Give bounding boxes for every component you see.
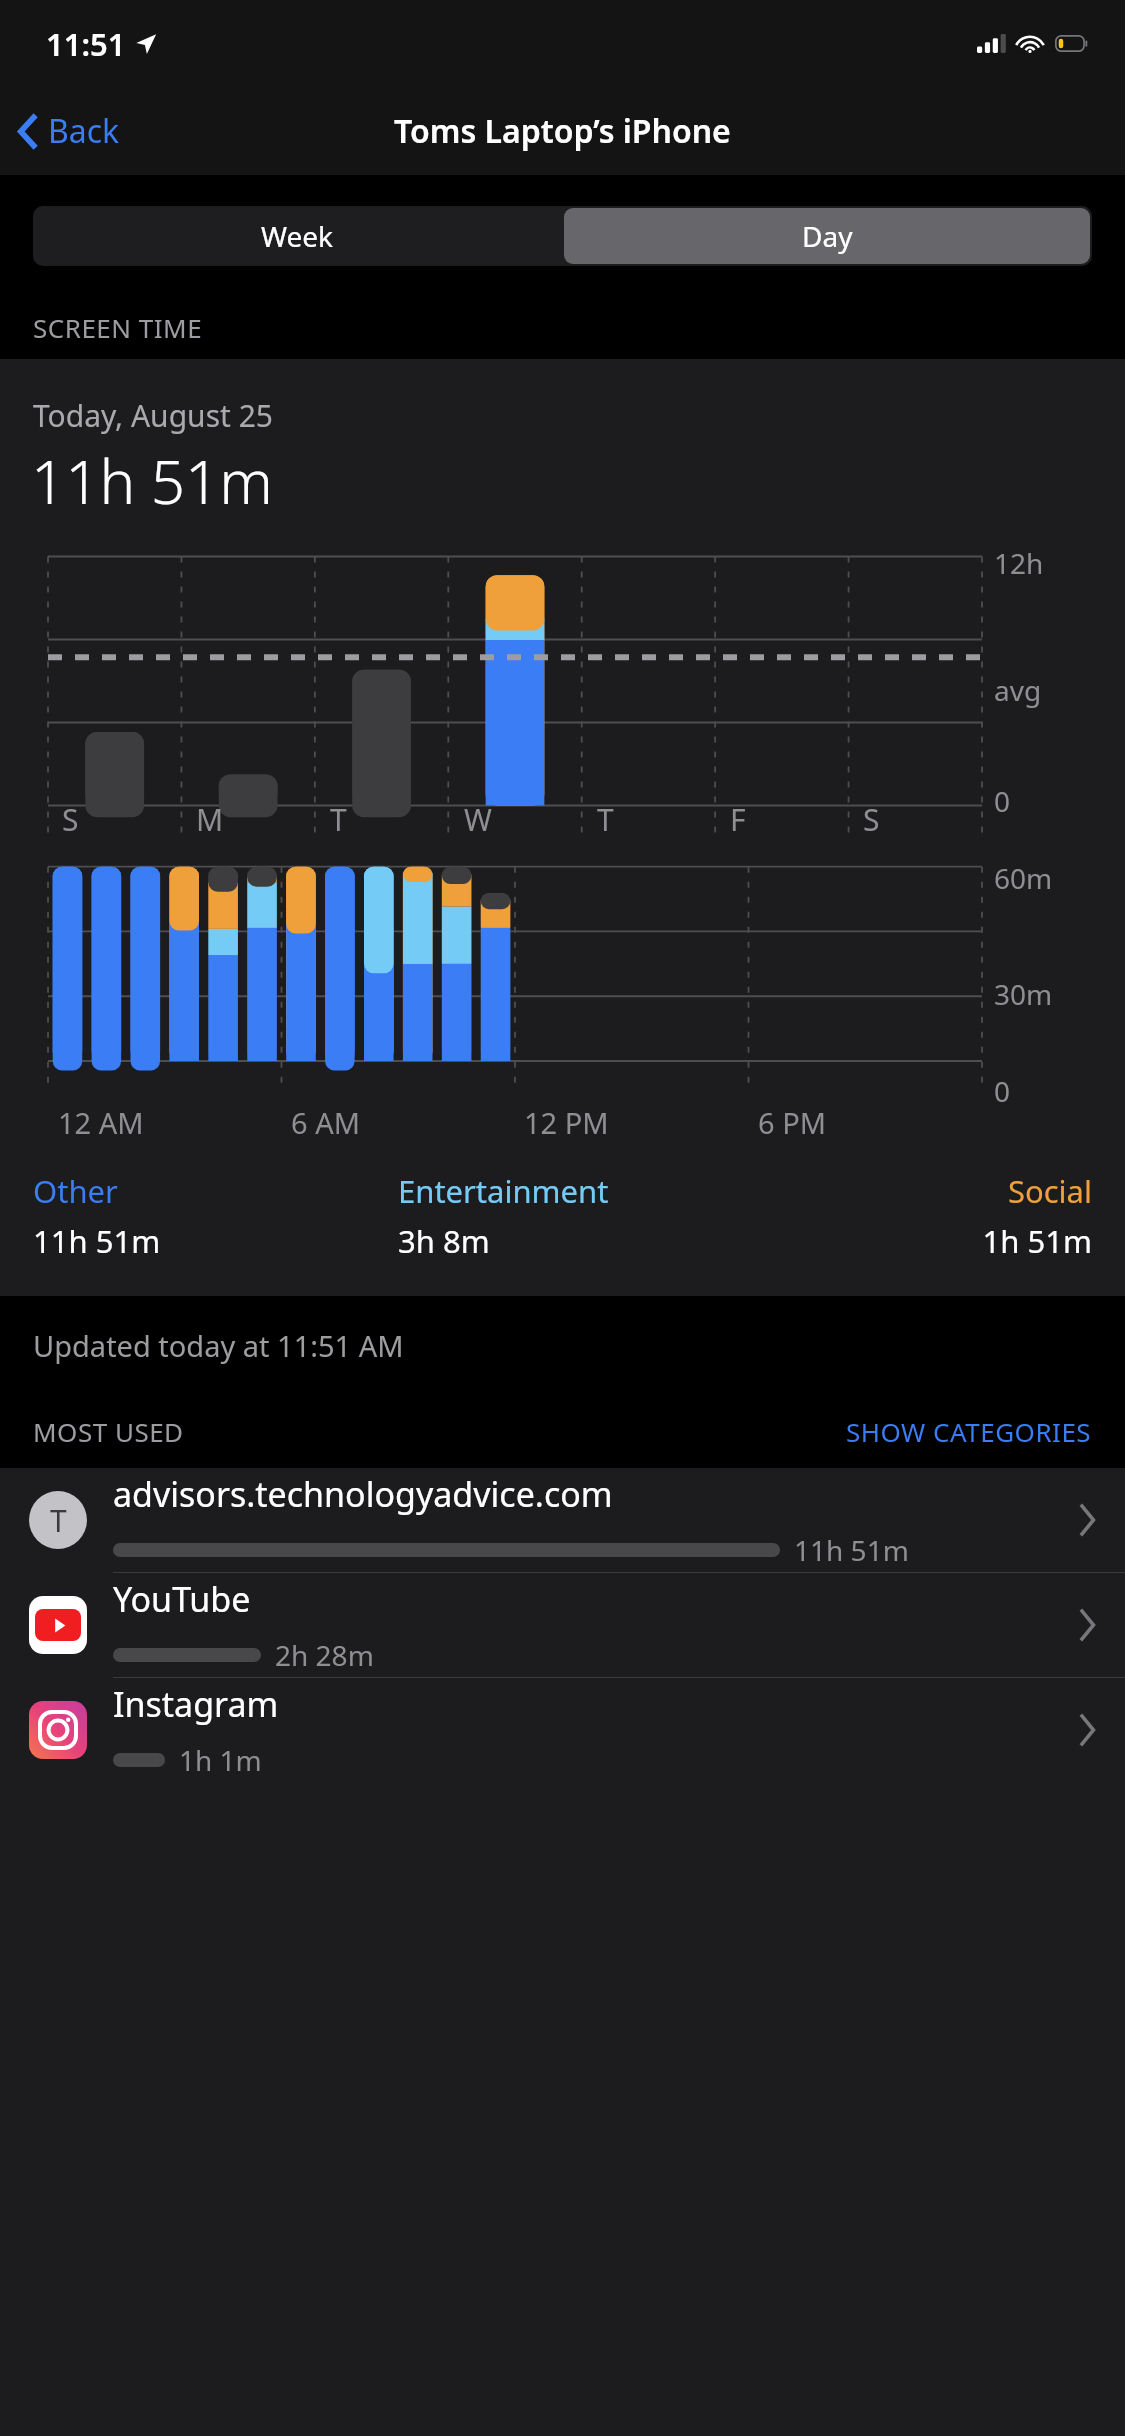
staticText: Back (48, 109, 120, 153)
staticText: Week (261, 217, 334, 255)
staticText: Toms Laptop’s iPhone (394, 109, 731, 153)
other: Open advisors.technologyadvice.com detai… (1078, 1503, 1096, 1537)
staticText: 11:51 (46, 23, 126, 65)
staticText: YouTube (113, 1576, 251, 1622)
staticText: Entertainment (398, 1170, 818, 1212)
staticText: avg (994, 671, 1042, 709)
button[interactable]: YouTube (0, 1572, 1125, 1677)
staticText: 12 PM (524, 1103, 609, 1142)
staticText: Instagram (113, 1681, 279, 1727)
staticText: T (597, 799, 614, 840)
staticText: 1h 51m (818, 1220, 1092, 1262)
staticText: Today, August 25 (33, 395, 273, 436)
staticText: 0 (994, 782, 1011, 820)
staticText: Social (818, 1170, 1092, 1212)
staticText: 1h 1m (179, 1741, 262, 1779)
button[interactable]: Week (33, 206, 562, 266)
staticText: F (730, 799, 746, 840)
staticText: 30m (994, 975, 1053, 1013)
button[interactable]: Back (0, 99, 136, 163)
staticText: 6 PM (758, 1103, 826, 1142)
other: Open YouTube details (1078, 1608, 1096, 1642)
staticText: 60m (994, 859, 1053, 897)
button[interactable]: Instagram (0, 1677, 1125, 1782)
staticText: Updated today at 11:51 AM (33, 1326, 404, 1365)
staticText: 6 AM (291, 1103, 360, 1142)
staticText: T (330, 799, 347, 840)
staticText: MOST USED (33, 1414, 184, 1449)
staticText: 12h (994, 544, 1044, 582)
staticText: T (50, 1500, 67, 1541)
staticText: 0 (994, 1072, 1011, 1110)
staticText: 12 AM (58, 1103, 144, 1142)
other: Open Instagram details (1078, 1713, 1096, 1747)
staticText: SCREEN TIME (33, 310, 203, 345)
button[interactable]: Day (564, 208, 1090, 264)
staticText: 3h 8m (398, 1220, 818, 1262)
staticText: 11h 51m (794, 1531, 909, 1569)
staticText: S (863, 799, 880, 840)
staticText: Other (33, 1170, 398, 1212)
button[interactable]: SHOW CATEGORIES (846, 1414, 1125, 1449)
staticText: S (62, 799, 79, 840)
staticText: W (464, 799, 492, 840)
staticText: Day (802, 217, 853, 255)
staticText: advisors.technologyadvice.com (113, 1471, 613, 1517)
staticText: M (196, 799, 224, 840)
staticText: 11h 51m (33, 1220, 398, 1262)
staticText: 2h 28m (275, 1636, 374, 1674)
button[interactable]: T (0, 1468, 1125, 1572)
staticText: 11h 51m (31, 440, 273, 522)
